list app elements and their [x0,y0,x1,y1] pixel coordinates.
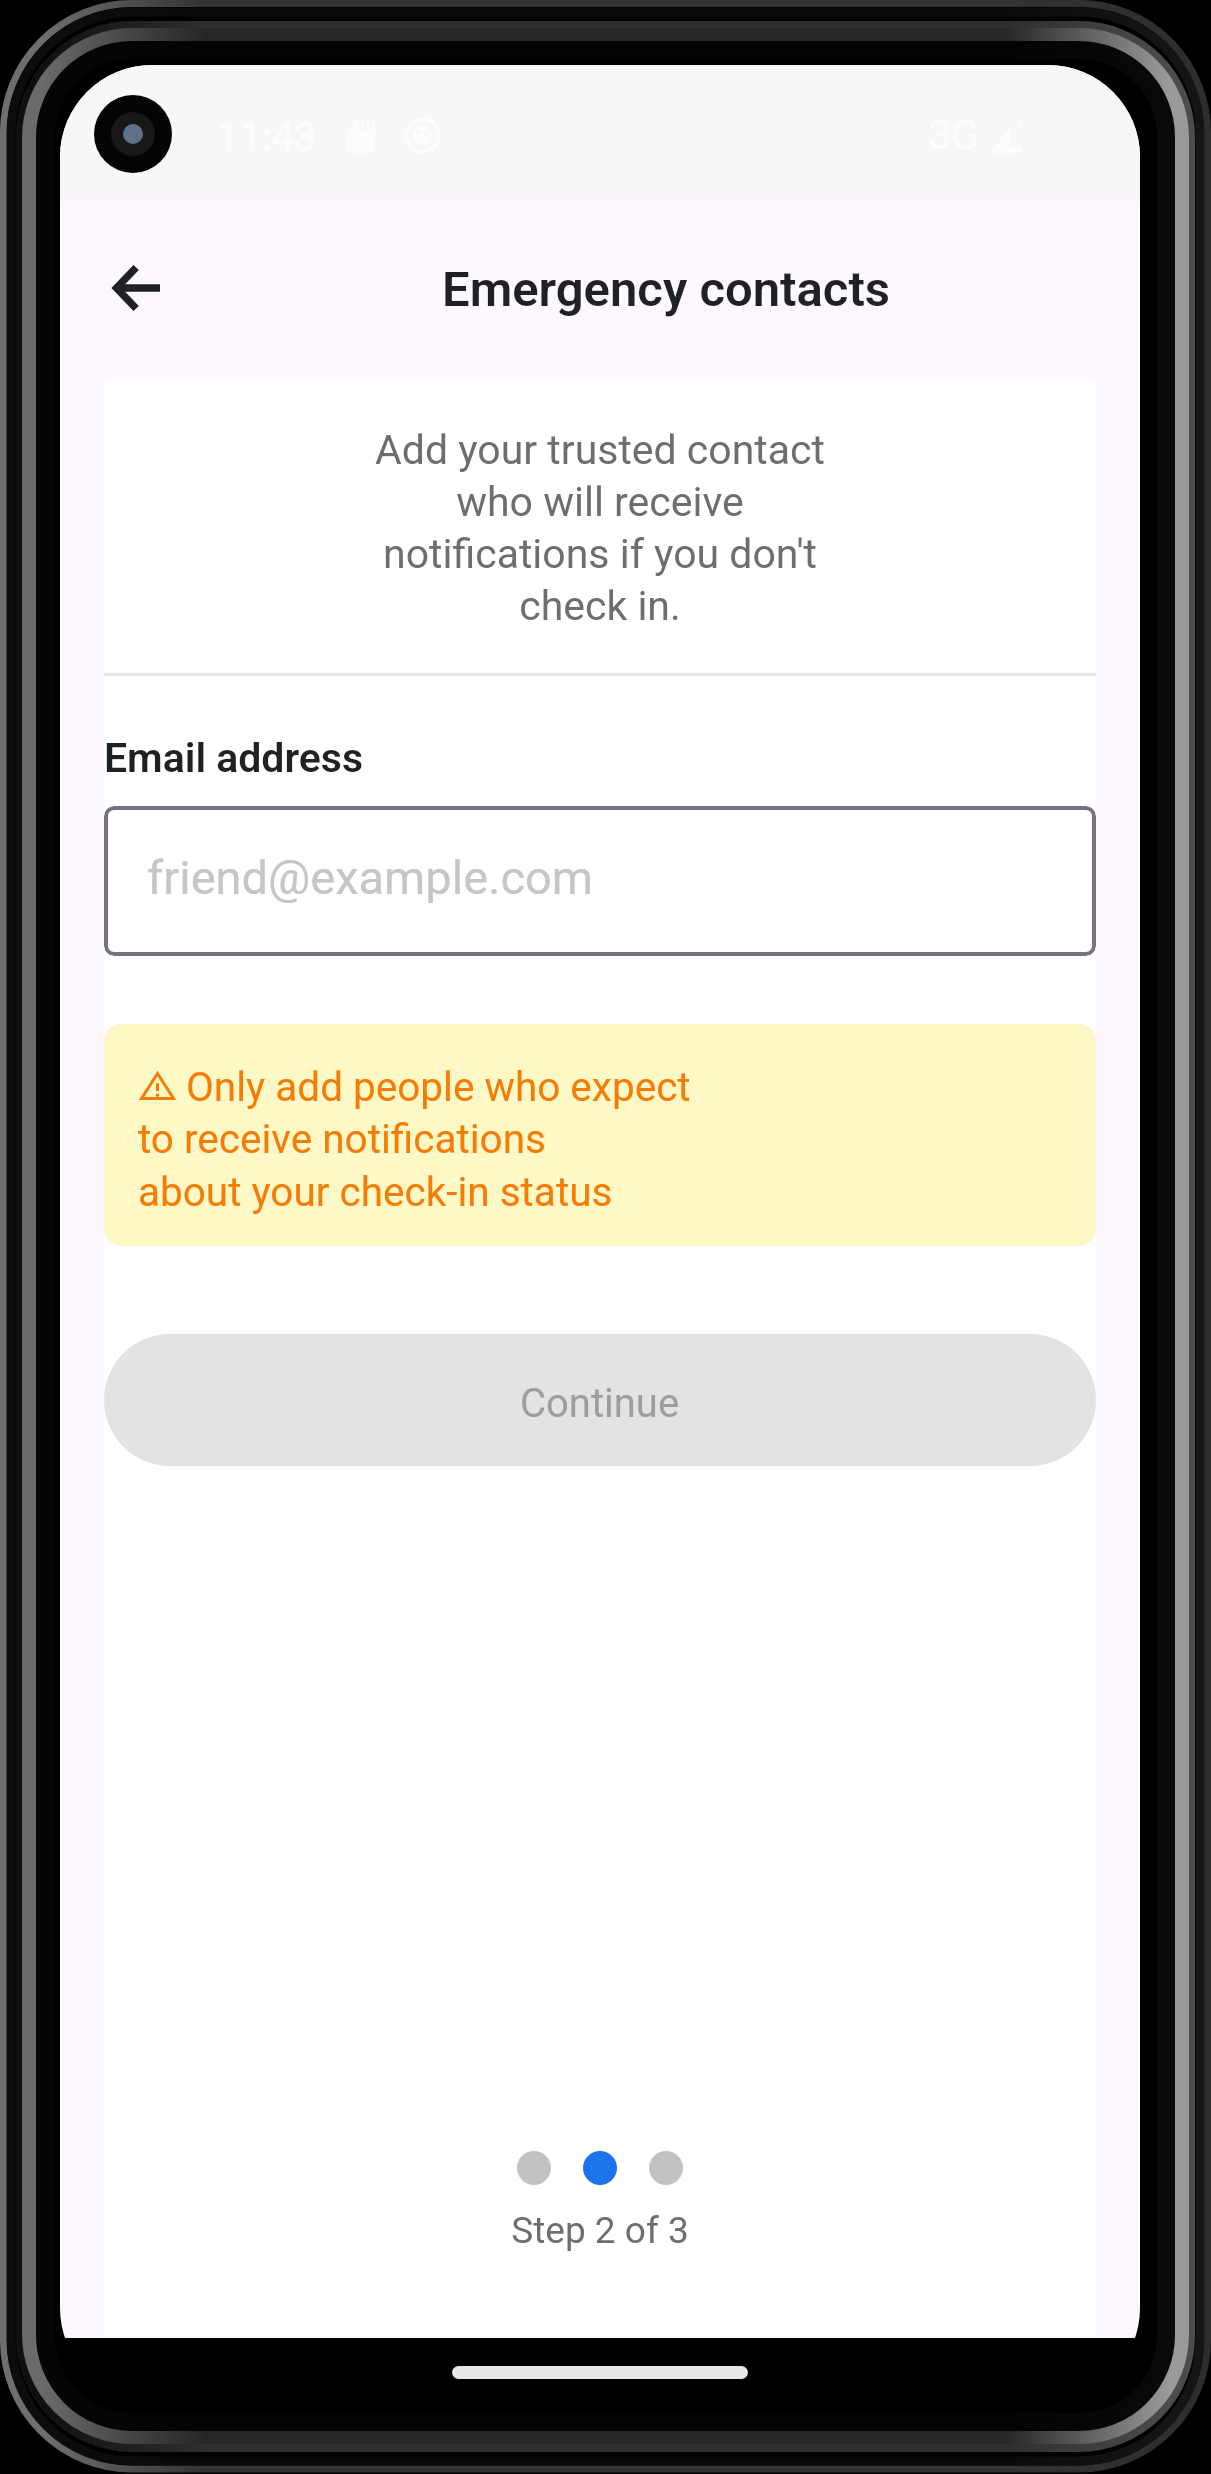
staticText: Emergency contacts [442,261,891,318]
staticText: Add your trusted contact who will receiv… [104,426,1096,630]
staticText: to receive notifications about your chec… [138,1115,613,1216]
button[interactable]: friend@example.com [104,806,1096,956]
staticText: Step 2 of 3 [104,2209,1096,2252]
staticText: Continue [520,1380,680,1427]
staticText: friend@example.com [147,850,594,905]
button[interactable]: Step 1 [517,2151,551,2185]
button[interactable]: Step 2 [583,2151,617,2185]
button[interactable]: Step 3 [649,2151,683,2185]
staticText: Only add people who expect [186,1063,691,1110]
staticText: Email address [104,734,364,782]
button[interactable]: Continue [104,1334,1096,1466]
button[interactable]: Back [91,242,183,334]
